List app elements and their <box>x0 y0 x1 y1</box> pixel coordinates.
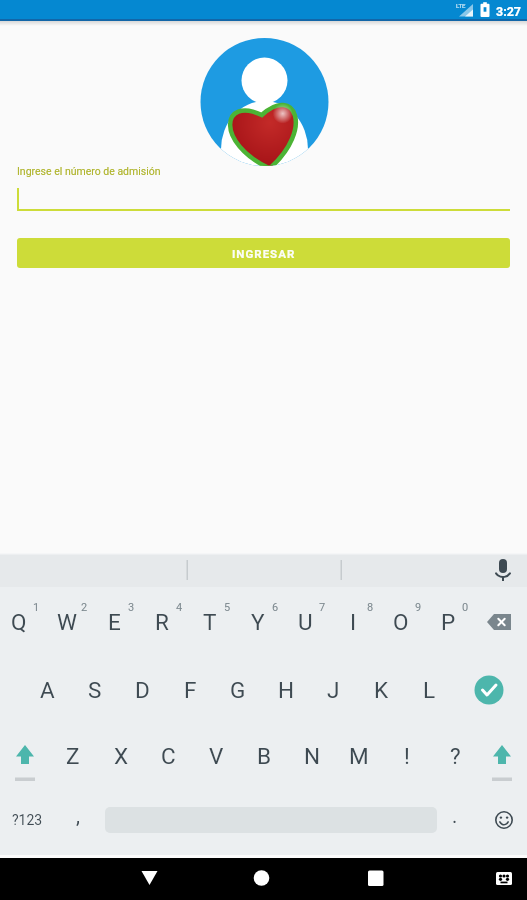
button[interactable]: G <box>214 660 262 720</box>
button[interactable]: H <box>262 660 310 720</box>
staticText: X <box>114 743 129 769</box>
staticText: I <box>350 609 357 635</box>
button[interactable]: M <box>335 726 383 786</box>
button[interactable] <box>477 726 527 786</box>
staticText: 9 <box>415 601 422 614</box>
button[interactable]: B <box>240 726 288 786</box>
button[interactable] <box>239 858 287 900</box>
button[interactable]: Y <box>234 592 282 652</box>
button[interactable]: . <box>431 785 479 845</box>
staticText: 2 <box>81 601 88 614</box>
button[interactable]: N <box>288 726 336 786</box>
staticText: 3:27 <box>496 4 522 19</box>
button[interactable]: S <box>71 660 119 720</box>
staticText: 4 <box>176 601 183 614</box>
staticText: Q <box>11 609 27 635</box>
staticText: , <box>76 804 80 827</box>
button[interactable] <box>128 858 176 900</box>
button[interactable]: A <box>23 660 71 720</box>
staticText: LTE <box>456 2 466 9</box>
button[interactable]: K <box>357 660 405 720</box>
staticText: 5 <box>224 601 231 614</box>
staticText: INGRESAR <box>232 247 296 260</box>
button[interactable] <box>483 858 525 900</box>
staticText: ?123 <box>12 812 43 828</box>
staticText: Y <box>251 609 265 635</box>
button[interactable]: P <box>424 592 472 652</box>
staticText: 3 <box>128 601 135 614</box>
staticText: Z <box>66 743 80 769</box>
staticText: H <box>278 677 295 703</box>
staticText: K <box>374 677 389 703</box>
staticText: S <box>88 677 102 703</box>
button[interactable]: Q <box>0 592 43 652</box>
staticText: ! <box>404 743 410 769</box>
staticText: E <box>108 609 121 635</box>
staticText: R <box>155 609 169 635</box>
button[interactable]: E <box>90 592 138 652</box>
button[interactable] <box>480 792 527 847</box>
staticText: Ingrese el número de admisión <box>17 165 161 177</box>
button[interactable]: X <box>97 726 145 786</box>
button[interactable] <box>476 592 526 652</box>
staticText: G <box>230 677 246 703</box>
button[interactable]: INGRESAR <box>17 238 510 268</box>
button[interactable]: ! <box>383 726 431 786</box>
button[interactable]: O <box>377 592 425 652</box>
staticText: L <box>423 677 436 703</box>
staticText: T <box>203 609 217 635</box>
button[interactable]: L <box>405 660 453 720</box>
button[interactable]: F <box>166 660 214 720</box>
button[interactable]: Z <box>49 726 97 786</box>
staticText: 6 <box>272 601 279 614</box>
staticText: D <box>135 677 150 703</box>
staticText: J <box>327 677 340 703</box>
button[interactable]: , <box>54 785 102 845</box>
staticText: ? <box>450 743 461 769</box>
button[interactable]: ? <box>431 726 479 786</box>
staticText: 8 <box>367 601 374 614</box>
staticText: N <box>304 743 321 769</box>
staticText: P <box>441 609 456 635</box>
button[interactable]: V <box>192 726 240 786</box>
button[interactable]: U <box>281 592 329 652</box>
button[interactable] <box>105 792 437 847</box>
staticText: 0 <box>462 601 469 614</box>
button[interactable] <box>465 660 525 720</box>
staticText: M <box>349 743 369 769</box>
staticText: W <box>57 609 77 635</box>
button[interactable] <box>351 858 399 900</box>
button[interactable]: J <box>309 660 357 720</box>
button[interactable]: W <box>43 592 91 652</box>
staticText: . <box>452 804 458 827</box>
button[interactable]: D <box>118 660 166 720</box>
staticText: V <box>209 743 224 769</box>
button[interactable] <box>0 726 50 786</box>
staticText: U <box>298 609 313 635</box>
button[interactable]: C <box>144 726 192 786</box>
button[interactable]: R <box>138 592 186 652</box>
staticText: B <box>257 743 272 769</box>
staticText: C <box>161 743 176 769</box>
button[interactable]: T <box>186 592 234 652</box>
button[interactable]: I <box>329 592 377 652</box>
button[interactable]: ?123 <box>1 790 53 850</box>
staticText: O <box>393 609 409 635</box>
staticText: A <box>40 677 55 703</box>
staticText: F <box>184 677 197 703</box>
staticText: 7 <box>319 601 326 614</box>
staticText: 1 <box>33 601 40 614</box>
